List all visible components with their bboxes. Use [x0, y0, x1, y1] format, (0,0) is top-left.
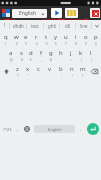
- staticText: 0: [95, 42, 97, 46]
- staticText: e: [24, 33, 28, 41]
- staticText: 7: [65, 42, 67, 46]
- button[interactable]: x: [22, 63, 33, 79]
- staticText: ": [27, 74, 29, 78]
- button[interactable]: Go to web browser: [65, 8, 78, 18]
- staticText: gh6: [48, 23, 56, 29]
- button[interactable]: English: [34, 125, 75, 133]
- staticText: p: [94, 33, 98, 41]
- staticText: ?: [82, 74, 84, 78]
- staticText: !: [72, 74, 73, 78]
- staticText: o: [84, 33, 88, 41]
- button[interactable]: !: [0, 20, 9, 31]
- button[interactable]: m: [77, 63, 88, 79]
- staticText: +: [70, 58, 72, 62]
- staticText: test: [31, 23, 39, 29]
- staticText: :: [50, 74, 51, 78]
- button[interactable]: More suggestions: [92, 20, 101, 31]
- button[interactable]: u: [61, 31, 71, 47]
- button[interactable]: y: [51, 31, 61, 47]
- button[interactable]: g: [46, 47, 56, 63]
- staticText: 9: [85, 42, 87, 46]
- button[interactable]: Backspace: [88, 63, 101, 79]
- staticText: 5: [46, 42, 48, 46]
- button[interactable]: Close: [90, 8, 100, 18]
- staticText: t: [45, 33, 48, 41]
- staticText: ?123: [3, 127, 12, 132]
- staticText: h: [59, 49, 63, 57]
- button[interactable]: Speech text: [51, 8, 62, 18]
- staticText: (: [81, 58, 82, 62]
- staticText: d0: [65, 23, 71, 29]
- button[interactable]: dhdh: [10, 20, 26, 31]
- button[interactable]: test: [27, 20, 43, 31]
- button[interactable]: Change keyboard language: [22, 79, 32, 179]
- staticText: 6: [55, 42, 57, 46]
- staticText: u: [64, 33, 68, 41]
- staticText: 8: [75, 42, 77, 46]
- staticText: m: [80, 65, 86, 73]
- staticText: @: [10, 58, 13, 62]
- button[interactable]: f: [36, 47, 46, 63]
- button[interactable]: h: [56, 47, 66, 63]
- button[interactable]: Open text file: [1, 8, 11, 18]
- staticText: _: [41, 58, 43, 62]
- staticText: q: [4, 33, 8, 41]
- button[interactable]: t: [41, 31, 51, 47]
- button[interactable]: p: [91, 31, 101, 47]
- button[interactable]: n: [66, 63, 77, 79]
- staticText: k: [79, 49, 83, 57]
- staticText: dhdh: [13, 23, 24, 29]
- button[interactable]: w: [11, 31, 21, 47]
- button[interactable]: d0: [60, 20, 75, 31]
- button[interactable]: d: [26, 47, 36, 63]
- staticText: y: [54, 33, 58, 41]
- staticText: w: [14, 33, 19, 41]
- button[interactable]: Enter: [87, 123, 99, 135]
- staticText: 3: [25, 42, 27, 46]
- button[interactable]: e: [21, 31, 31, 47]
- staticText: .: [80, 126, 82, 133]
- staticText: 1: [5, 42, 7, 46]
- button[interactable]: gh6: [44, 20, 59, 31]
- button[interactable]: r: [31, 31, 41, 47]
- staticText: English: [19, 10, 37, 17]
- button[interactable]: a: [5, 47, 16, 63]
- button[interactable]: English: [12, 9, 47, 18]
- button[interactable]: l: [86, 47, 96, 63]
- staticText: v: [48, 65, 52, 73]
- button[interactable]: line: [76, 20, 91, 31]
- staticText: English: [48, 127, 62, 132]
- button[interactable]: q: [0, 31, 11, 47]
- staticText: n: [70, 65, 74, 73]
- button[interactable]: i: [71, 31, 81, 47]
- button[interactable]: ?123: [0, 79, 14, 179]
- staticText: b: [59, 65, 63, 73]
- staticText: a: [9, 49, 13, 57]
- staticText: 2: [16, 42, 18, 46]
- staticText: d: [29, 49, 33, 57]
- staticText: f: [40, 49, 43, 57]
- staticText: s: [20, 49, 23, 57]
- button[interactable]: j: [66, 47, 76, 63]
- staticText: -: [61, 58, 62, 62]
- button[interactable]: o: [81, 31, 91, 47]
- staticText: &: [50, 58, 53, 62]
- button[interactable]: k: [76, 47, 86, 63]
- staticText: ': [38, 74, 39, 78]
- button[interactable]: b: [55, 63, 66, 79]
- staticText: 4: [36, 42, 38, 46]
- button[interactable]: z: [12, 63, 22, 79]
- button[interactable]: Shift: [0, 63, 12, 79]
- staticText: x: [26, 65, 30, 73]
- staticText: ;: [61, 74, 62, 78]
- staticText: r: [35, 33, 38, 41]
- button[interactable]: c: [33, 63, 44, 79]
- staticText: g: [49, 49, 53, 57]
- button[interactable]: v: [44, 63, 55, 79]
- button[interactable]: s: [16, 47, 26, 63]
- staticText: !: [4, 22, 6, 29]
- staticText: l: [90, 49, 92, 57]
- staticText: *: [17, 74, 19, 78]
